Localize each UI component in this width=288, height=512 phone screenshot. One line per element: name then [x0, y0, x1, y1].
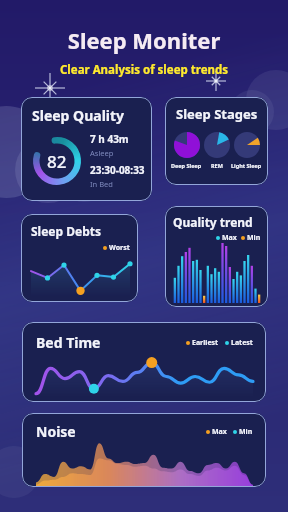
staticText: Quality trend	[173, 214, 253, 230]
staticText: In Bed	[90, 179, 113, 189]
button[interactable]: Sleep Stages	[165, 97, 268, 185]
staticText: 7 h 43m	[90, 132, 129, 146]
staticText: Worst	[109, 243, 130, 253]
button[interactable]: Sleep Quality	[21, 97, 152, 201]
staticText: REM	[211, 162, 223, 169]
staticText: Latest	[231, 338, 253, 348]
staticText: Asleep	[90, 148, 114, 158]
staticText: Sleep Stages	[176, 105, 258, 123]
button[interactable]: Bed Time	[22, 322, 266, 402]
staticText: Max	[212, 427, 227, 437]
staticText: Min	[239, 427, 253, 437]
button[interactable]: Noise	[22, 413, 266, 487]
button[interactable]: Sleep Debts	[21, 214, 138, 302]
staticText: Min	[247, 233, 261, 243]
staticText: Noise	[36, 422, 76, 441]
staticText: 82	[47, 150, 67, 173]
staticText: 23:30-08:33	[90, 163, 145, 177]
staticText: Sleep Debts	[31, 223, 101, 239]
staticText: Deep Sleep	[171, 162, 202, 169]
staticText: Bed Time	[36, 333, 101, 352]
staticText: Max	[222, 233, 237, 243]
staticText: Clear Analysis of sleep trends	[0, 62, 288, 78]
staticText: Sleep Moniter	[0, 25, 288, 55]
staticText: Earliest	[192, 338, 219, 348]
staticText: Sleep Quality	[32, 106, 125, 125]
button[interactable]: Quality trend	[165, 206, 268, 307]
staticText: Light Sleep	[231, 162, 262, 169]
